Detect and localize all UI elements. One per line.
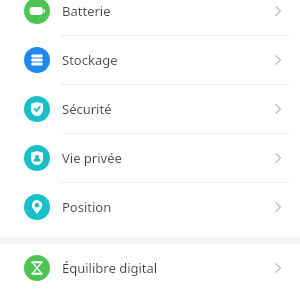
button[interactable]: Stockage — [0, 36, 300, 84]
button[interactable]: Batterie — [0, 0, 300, 35]
button[interactable]: Équilibre digital — [0, 249, 300, 287]
staticText: Équilibre digital — [62, 259, 158, 277]
staticText: Vie privée — [62, 149, 122, 167]
staticText: Batterie — [62, 2, 111, 20]
staticText: Stockage — [62, 51, 118, 69]
button[interactable]: Sécurité — [0, 85, 300, 133]
button[interactable]: Position — [0, 183, 300, 231]
staticText: Position — [62, 198, 112, 216]
button[interactable]: Vie privée — [0, 134, 300, 182]
staticText: Sécurité — [62, 100, 112, 118]
